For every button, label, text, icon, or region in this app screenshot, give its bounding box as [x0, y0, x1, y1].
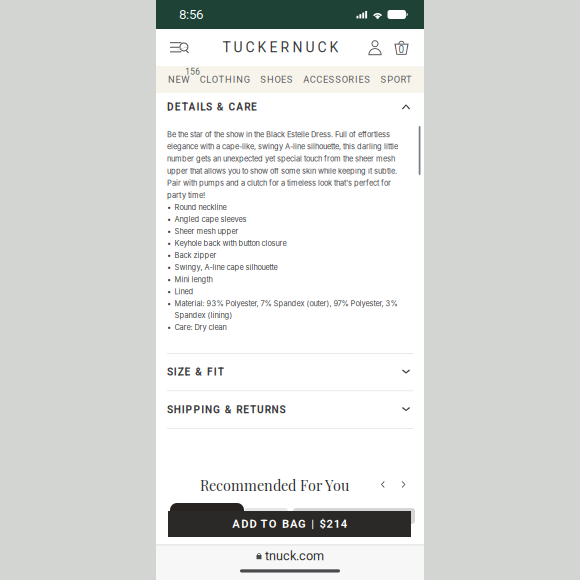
staticText: •: [167, 299, 171, 308]
staticText: SPORT: [381, 74, 412, 85]
staticText: Angled cape sleeves: [174, 215, 246, 224]
staticText: •: [167, 251, 171, 260]
button[interactable]: Next recommendation: [398, 477, 411, 493]
staticText: Back zipper: [174, 251, 216, 260]
button[interactable]: Shopping bag, 0 items: [388, 29, 415, 65]
staticText: tnuck.com: [265, 548, 324, 563]
button[interactable]: SPORT: [381, 65, 412, 94]
staticText: Swingy, A-line cape silhouette: [174, 263, 277, 272]
staticText: T U C K E R N U C K: [222, 39, 338, 56]
button[interactable]: ADD TO BAG | $214: [168, 511, 411, 537]
staticText: SHIPPING & RETURNS: [167, 404, 285, 416]
staticText: Keyhole back with button closure: [174, 239, 286, 248]
staticText: •: [167, 323, 171, 332]
staticText: •: [167, 275, 171, 284]
staticText: CLOTHING: [200, 74, 250, 85]
staticText: Recommended For You: [200, 475, 349, 495]
button[interactable]: Previous recommendation: [377, 477, 389, 493]
staticText: Sheer mesh upper: [174, 227, 238, 236]
staticText: 0: [398, 44, 404, 55]
staticText: ACCESSORIES: [303, 74, 370, 85]
staticText: Material: 93% Polyester, 7% Spandex (out…: [174, 299, 397, 320]
staticText: Mini length: [174, 275, 212, 284]
staticText: •: [167, 287, 171, 296]
staticText: Care: Dry clean: [174, 323, 226, 332]
staticText: •: [167, 203, 171, 212]
button[interactable]: CLOTHING: [200, 65, 250, 94]
staticText: •: [167, 215, 171, 224]
staticText: Be the star of the show in the Black Est…: [167, 130, 398, 200]
staticText: 8:56: [179, 7, 203, 22]
button[interactable]: SIZE & FIT: [156, 354, 424, 390]
staticText: Lined: [174, 287, 193, 296]
staticText: SIZE & FIT: [167, 366, 224, 378]
staticText: •: [167, 227, 171, 236]
button[interactable]: SHIPPING & RETURNS: [156, 391, 424, 428]
staticText: Round neckline: [174, 203, 226, 212]
staticText: •: [167, 263, 171, 272]
staticText: SHOES: [260, 74, 293, 85]
staticText: NEW: [168, 74, 189, 85]
button[interactable]: ACCESSORIES: [303, 65, 370, 94]
button[interactable]: Menu and search: [161, 30, 199, 65]
staticText: •: [167, 239, 171, 248]
button[interactable]: NEW: [168, 65, 189, 94]
button[interactable]: Account: [362, 29, 388, 65]
button[interactable]: DETAILS & CARE: [156, 93, 424, 121]
staticText: ADD TO BAG | $214: [232, 517, 347, 530]
staticText: DETAILS & CARE: [167, 101, 257, 113]
button[interactable]: SHOES: [260, 65, 293, 94]
staticText: 156: [185, 67, 200, 77]
